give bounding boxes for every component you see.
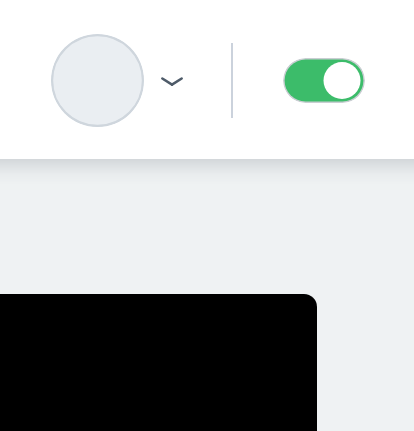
- button[interactable]: Toggle on: [283, 58, 365, 103]
- button[interactable]: Colour swatch: [51, 34, 144, 127]
- button[interactable]: Expand colour options: [153, 63, 190, 100]
- button[interactable]: [0, 294, 317, 431]
